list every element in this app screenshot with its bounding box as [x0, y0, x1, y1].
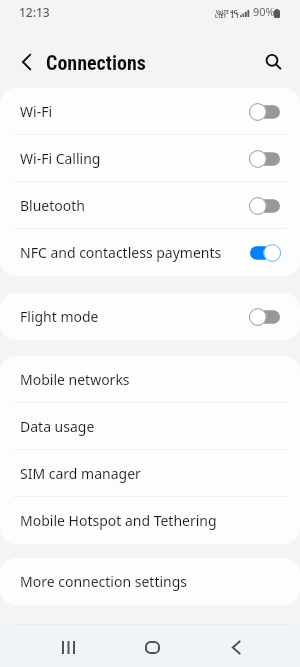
- staticText: NFC and contactless payments: [20, 243, 248, 262]
- button[interactable]: Mobile Hotspot and Tethering: [0, 497, 300, 544]
- button[interactable]: Mobile networks: [0, 356, 300, 403]
- staticText: SIM card manager: [20, 464, 141, 483]
- staticText: Data usage: [20, 417, 95, 436]
- staticText: 90%: [253, 4, 275, 19]
- button[interactable]: Search: [256, 44, 288, 76]
- staticText: More connection settings: [20, 572, 188, 591]
- staticText: Bluetooth: [20, 196, 248, 215]
- button[interactable]: Bluetooth: [0, 182, 300, 229]
- staticText: Wi-Fi Calling: [20, 149, 248, 168]
- staticText: Flight mode: [20, 307, 248, 326]
- button[interactable]: Flight mode: [0, 293, 300, 340]
- staticText: ↓↑: [230, 12, 241, 19]
- button[interactable]: NFC and contactless payments: [0, 229, 300, 276]
- button[interactable]: SIM card manager: [0, 450, 300, 497]
- button[interactable]: Wi-Fi Calling: [0, 135, 300, 182]
- staticText: LTE1: [215, 13, 226, 20]
- staticText: Wi-Fi: [20, 102, 248, 121]
- staticText: Connections: [46, 51, 146, 74]
- button[interactable]: Navigate up: [10, 46, 42, 78]
- button[interactable]: More connection settings: [0, 558, 300, 605]
- staticText: 12:13: [19, 4, 50, 20]
- button[interactable]: Back: [212, 626, 260, 667]
- button[interactable]: Recent apps: [44, 626, 92, 667]
- staticText: Mobile Hotspot and Tethering: [20, 511, 217, 530]
- button[interactable]: Wi-Fi: [0, 88, 300, 135]
- button[interactable]: Data usage: [0, 403, 300, 450]
- staticText: Mobile networks: [20, 370, 130, 389]
- staticText: 4G: [230, 8, 238, 16]
- button[interactable]: Home: [128, 626, 176, 667]
- staticText: VoLTE: [216, 9, 229, 15]
